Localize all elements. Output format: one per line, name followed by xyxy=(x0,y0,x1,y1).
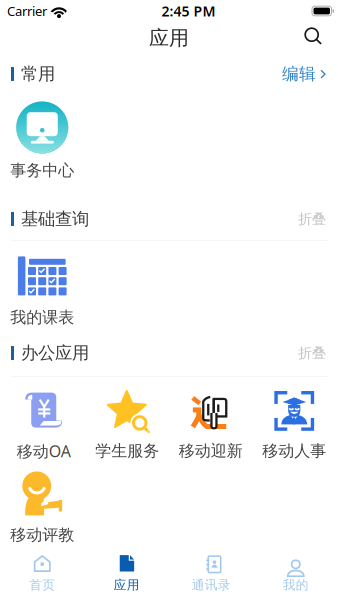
button[interactable]: 编辑 xyxy=(282,57,338,90)
staticText: 办公应用 xyxy=(21,342,89,364)
button[interactable]: 我的 xyxy=(253,548,338,600)
button[interactable]: 移动迎新 xyxy=(169,391,252,461)
staticText: 通讯录 xyxy=(192,577,231,593)
button[interactable]: 移动人事 xyxy=(252,391,336,461)
staticText: Carrier xyxy=(7,2,47,20)
button[interactable]: 移动评教 xyxy=(2,471,82,545)
button[interactable]: 我的课表 xyxy=(0,256,84,328)
staticText: 基础查询 xyxy=(21,208,89,230)
button[interactable]: 首页 xyxy=(0,548,84,600)
staticText: 我的 xyxy=(283,577,309,593)
button[interactable]: 应用 xyxy=(84,548,169,600)
staticText: 学生服务 xyxy=(95,441,159,461)
staticText: 应用 xyxy=(149,25,189,51)
button[interactable]: Search xyxy=(293,22,333,54)
button[interactable]: 移动OA xyxy=(2,390,85,462)
button[interactable]: 通讯录 xyxy=(169,548,253,600)
staticText: 我的课表 xyxy=(10,307,74,328)
staticText: 常用 xyxy=(21,63,55,85)
staticText: 移动OA xyxy=(17,440,71,462)
staticText: 折叠 xyxy=(298,210,326,228)
staticText: 应用 xyxy=(114,577,140,593)
staticText: 移动评教 xyxy=(10,525,74,545)
staticText: 移动迎新 xyxy=(179,441,243,461)
staticText: 事务中心 xyxy=(10,160,74,181)
button[interactable]: 学生服务 xyxy=(85,391,169,461)
staticText: 编辑 xyxy=(282,63,316,84)
staticText: 移动人事 xyxy=(262,441,326,461)
button[interactable]: 事务中心 xyxy=(0,101,84,181)
staticText: 首页 xyxy=(29,577,55,593)
staticText: 2:45 PM xyxy=(161,1,215,21)
staticText: 折叠 xyxy=(298,344,326,362)
